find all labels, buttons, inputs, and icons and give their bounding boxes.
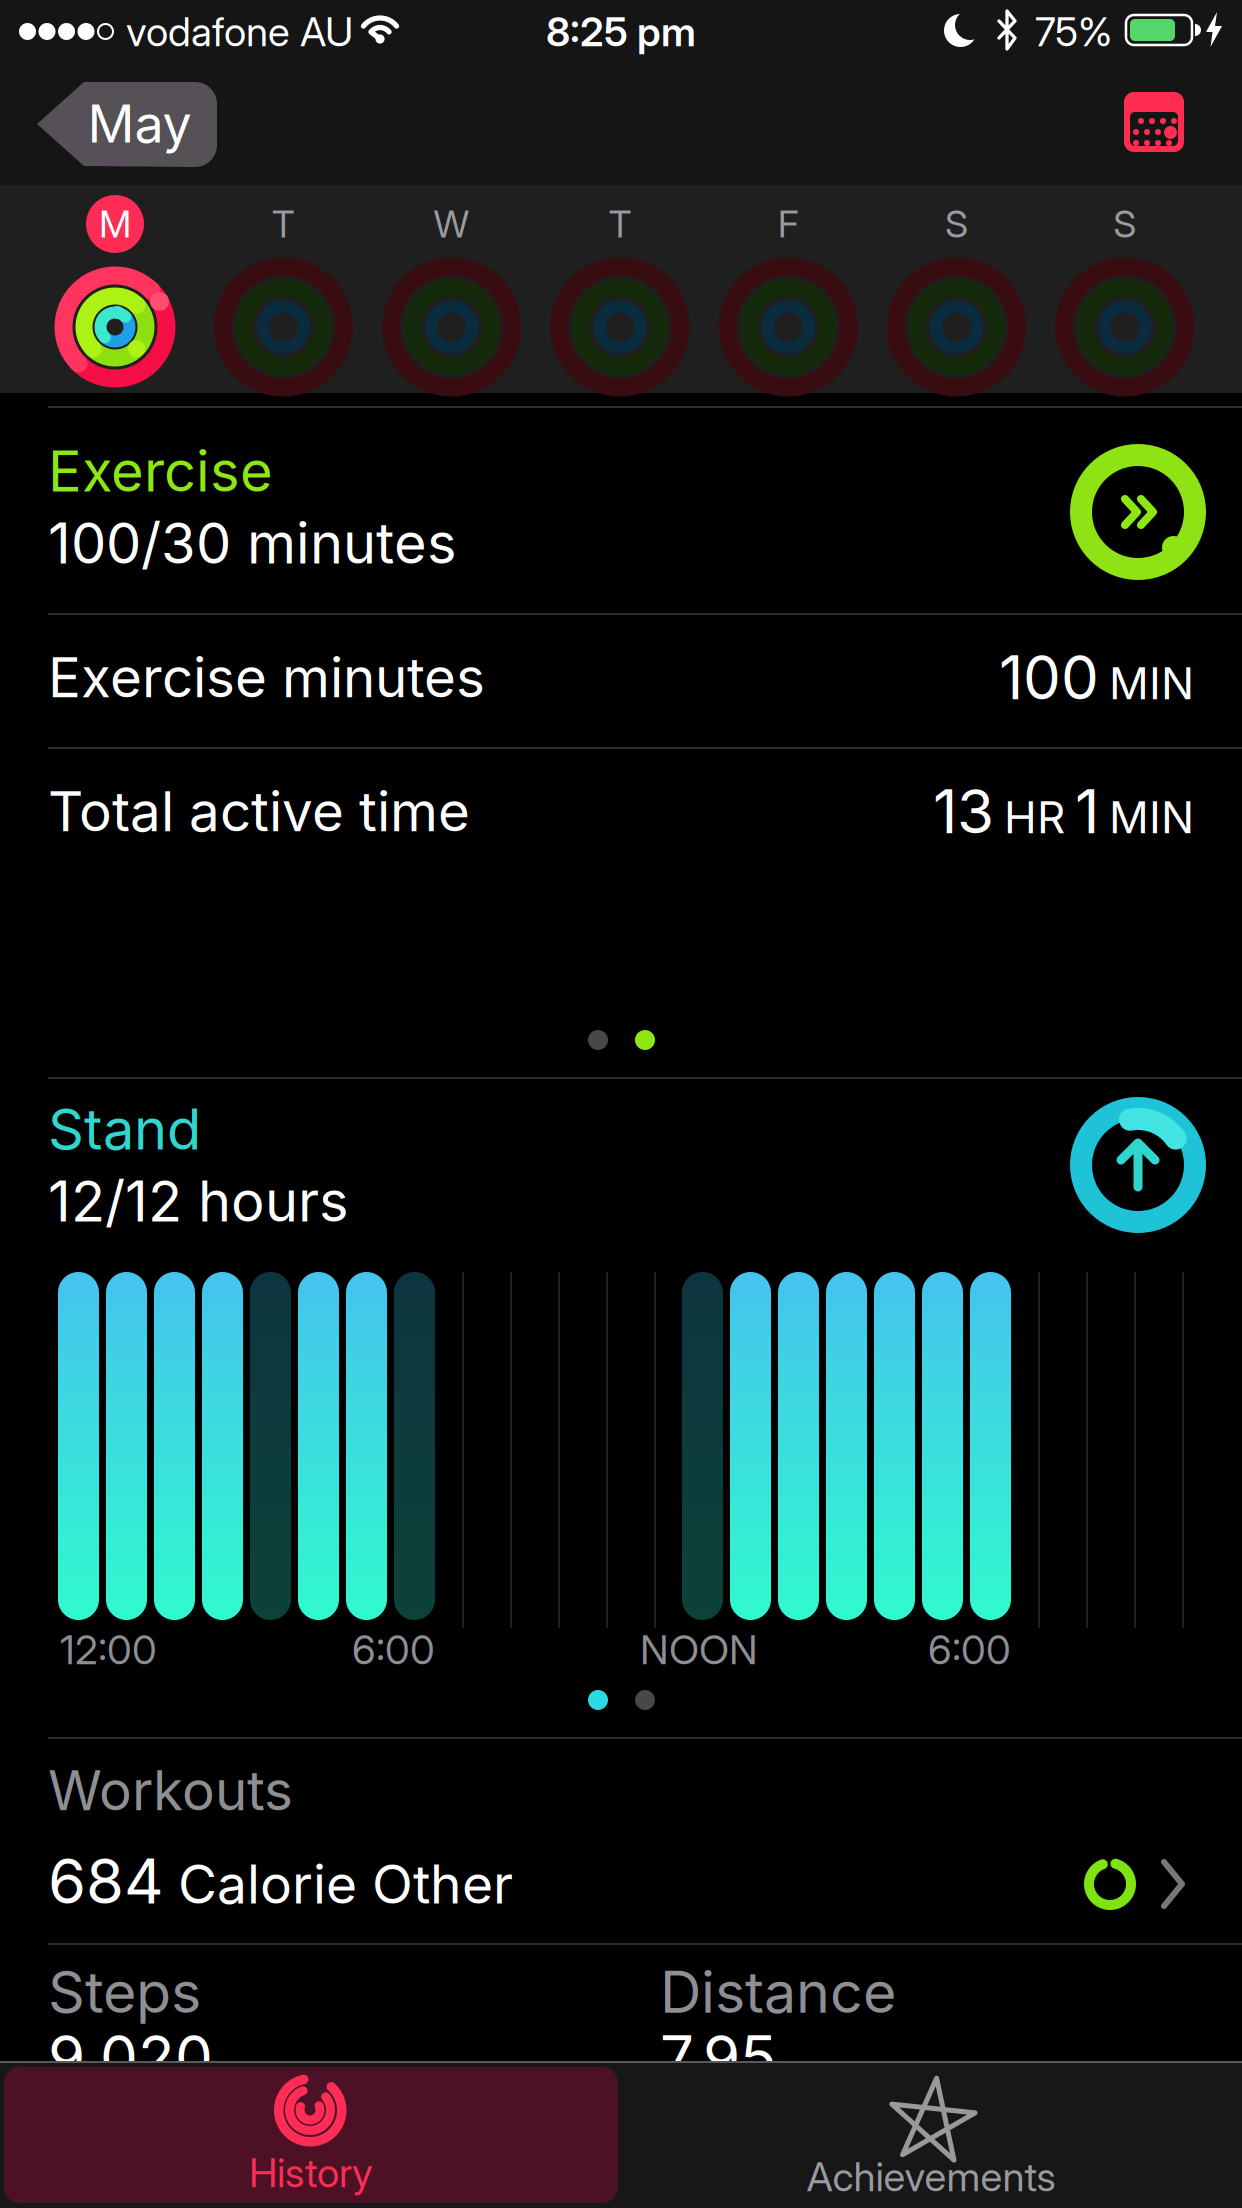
staticText: 12:00: [60, 1626, 157, 1673]
staticText: Total active time: [48, 779, 470, 843]
staticText: 9,020: [48, 2022, 213, 2093]
staticText: Steps: [48, 1958, 201, 2026]
button[interactable]: 684: [48, 1845, 1242, 1941]
button[interactable]: T: [199, 185, 367, 393]
button[interactable]: W: [368, 185, 536, 393]
staticText: Exercise: [48, 438, 273, 504]
button[interactable]: M: [31, 185, 199, 393]
staticText: Exercise minutes: [48, 645, 485, 709]
staticText: Calorie Other: [178, 1853, 513, 1915]
staticText: MIN: [1109, 791, 1194, 843]
staticText: 100: [999, 642, 1099, 713]
staticText: Achievements: [806, 2153, 1055, 2200]
staticText: 7.95: [660, 2022, 776, 2093]
staticText: HR: [1004, 791, 1065, 843]
staticText: T: [272, 202, 295, 246]
button[interactable]: Achievements: [620, 2067, 1242, 2207]
staticText: History: [249, 2149, 373, 2196]
staticText: S: [945, 202, 968, 246]
staticText: S: [1113, 202, 1136, 246]
staticText: May: [87, 93, 191, 154]
button[interactable]: T: [536, 185, 704, 393]
staticText: vodafone AU: [126, 8, 353, 55]
staticText: T: [608, 202, 631, 246]
staticText: 1: [1075, 776, 1099, 847]
staticText: 12/12 hours: [48, 1168, 349, 1234]
staticText: Distance: [660, 1958, 896, 2026]
button[interactable]: May: [36, 81, 217, 167]
button[interactable]: S: [872, 185, 1040, 393]
staticText: NOON: [640, 1626, 758, 1673]
staticText: Stand: [48, 1096, 201, 1162]
staticText: 6:00: [352, 1626, 435, 1673]
button[interactable]: F: [704, 185, 872, 393]
staticText: 8:25 pm: [546, 8, 696, 55]
staticText: W: [434, 202, 470, 246]
staticText: M: [99, 202, 131, 246]
staticText: 13: [933, 776, 994, 847]
button[interactable]: History: [4, 2067, 618, 2203]
staticText: MIN: [1109, 657, 1194, 709]
staticText: 684: [48, 1845, 164, 1917]
staticText: 75%: [1035, 8, 1112, 55]
staticText: 100/30 minutes: [48, 510, 457, 576]
staticText: 6:00: [928, 1626, 1011, 1673]
button[interactable]: S: [1041, 185, 1209, 393]
staticText: F: [778, 202, 799, 246]
button[interactable]: [1124, 92, 1184, 152]
staticText: Workouts: [48, 1758, 293, 1822]
